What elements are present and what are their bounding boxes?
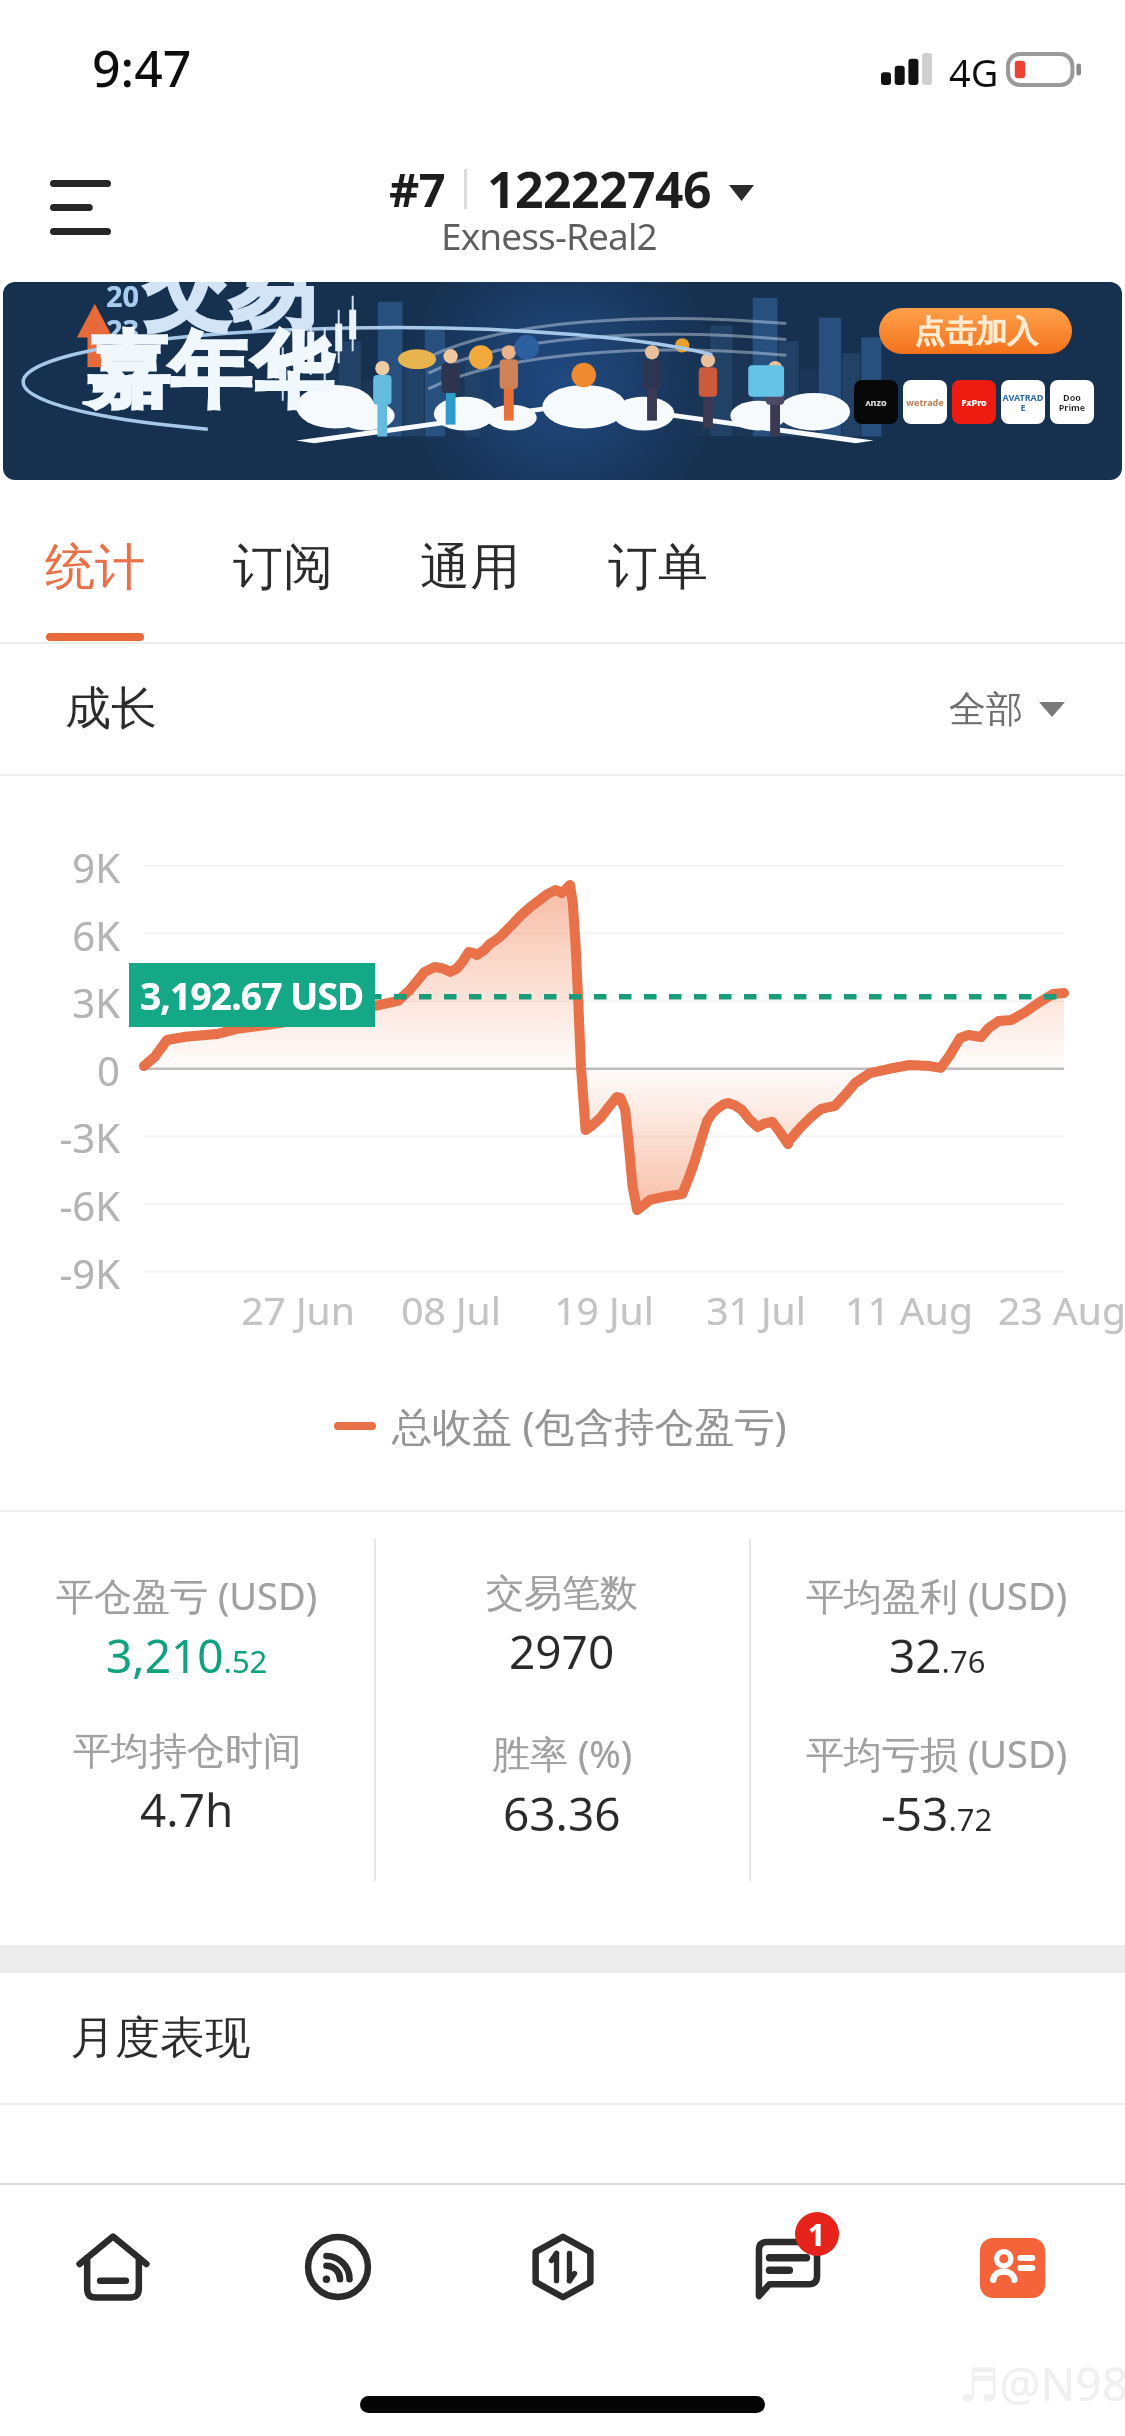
staticText: #7 bbox=[389, 157, 446, 221]
staticText: 9K bbox=[72, 840, 120, 894]
staticText: 统计 bbox=[45, 536, 145, 599]
staticText: 成长 bbox=[65, 680, 157, 738]
staticText: 23 Aug bbox=[998, 1283, 1125, 1336]
staticText: 27 Jun bbox=[241, 1283, 355, 1336]
staticText: 1 bbox=[808, 2214, 826, 2255]
button[interactable]: 交易笔数 bbox=[382, 1569, 742, 1709]
staticText: FxPro bbox=[961, 396, 987, 408]
staticText: 3,192.67 USD bbox=[140, 970, 364, 1020]
staticText: -53.72 bbox=[881, 1782, 993, 1845]
staticText: 嘉年华 bbox=[87, 320, 333, 423]
button[interactable]: 胜率 (%) bbox=[382, 1727, 742, 1867]
staticText: 平均盈利 (USD) bbox=[806, 1569, 1068, 1621]
staticText: 20 23 bbox=[106, 282, 140, 349]
staticText: 3K bbox=[72, 975, 120, 1029]
button[interactable]: 平均亏损 (USD) bbox=[757, 1727, 1117, 1867]
button[interactable]: 平均持仓时间 bbox=[7, 1727, 367, 1867]
button[interactable]: 点击加入 bbox=[879, 308, 1072, 354]
staticText: 3,210.52 bbox=[106, 1624, 268, 1687]
button[interactable]: Messages bbox=[675, 2185, 900, 2375]
staticText: ʌnzo bbox=[865, 396, 887, 408]
staticText: 交易笔数 bbox=[486, 1569, 638, 1617]
button[interactable]: 订阅 bbox=[203, 500, 363, 642]
staticText: 31 Jul bbox=[706, 1283, 806, 1336]
button[interactable]: 平均盈利 (USD) bbox=[757, 1569, 1117, 1709]
button[interactable]: #7 bbox=[340, 150, 790, 260]
button[interactable]: Home bbox=[0, 2185, 225, 2375]
staticText: 6K bbox=[72, 908, 120, 962]
staticText: 点击加入 bbox=[914, 312, 1038, 351]
staticText: 11 Aug bbox=[845, 1283, 973, 1336]
staticText: 通用 bbox=[420, 536, 520, 599]
button[interactable]: 通用 bbox=[390, 500, 550, 642]
staticText: Doo Prime bbox=[1050, 391, 1094, 413]
staticText: 0 bbox=[97, 1043, 120, 1097]
staticText: 交易 bbox=[143, 282, 315, 344]
staticText: -9K bbox=[59, 1246, 120, 1300]
button[interactable]: 平仓盈亏 (USD) bbox=[7, 1569, 367, 1709]
staticText: 全部 bbox=[949, 686, 1023, 733]
staticText: 63.36 bbox=[503, 1782, 621, 1845]
staticText: 2970 bbox=[509, 1620, 615, 1683]
staticText: 订单 bbox=[608, 536, 708, 599]
staticText: 平仓盈亏 (USD) bbox=[56, 1569, 318, 1621]
staticText: 32.76 bbox=[889, 1624, 986, 1687]
button[interactable]: 订单 bbox=[578, 500, 738, 642]
button[interactable]: Profile bbox=[900, 2185, 1125, 2375]
staticText: 4G bbox=[949, 46, 999, 98]
button[interactable]: Filter: all bbox=[949, 686, 1065, 733]
button[interactable]: Menu bbox=[22, 150, 138, 264]
staticText: 订阅 bbox=[233, 536, 333, 599]
staticText: 19 Jul bbox=[554, 1283, 654, 1336]
staticText: 08 Jul bbox=[401, 1283, 501, 1336]
staticText: Exness-Real2 bbox=[441, 210, 657, 260]
staticText: wetrade bbox=[906, 396, 944, 408]
staticText: AVATRADE bbox=[1001, 391, 1045, 413]
button[interactable]: 统计 bbox=[15, 500, 175, 642]
staticText: 平均亏损 (USD) bbox=[806, 1727, 1068, 1779]
staticText: -3K bbox=[59, 1110, 120, 1164]
button[interactable]: Signals bbox=[225, 2185, 450, 2375]
staticText: 4.7h bbox=[140, 1778, 234, 1841]
staticText: 月度表现 bbox=[70, 2010, 250, 2067]
staticText: 胜率 (%) bbox=[492, 1727, 633, 1779]
staticText: 平均持仓时间 bbox=[73, 1727, 301, 1775]
staticText: 总收益 (包含持仓盈亏) bbox=[392, 1398, 787, 1453]
staticText: 12222746 bbox=[487, 155, 711, 223]
staticText: -6K bbox=[59, 1178, 120, 1232]
staticText: ♬@N98 bbox=[958, 2352, 1125, 2415]
staticText: 9:47 bbox=[92, 34, 192, 102]
button[interactable]: Promotion banner bbox=[3, 282, 1122, 480]
button[interactable]: Trade bbox=[450, 2185, 675, 2375]
